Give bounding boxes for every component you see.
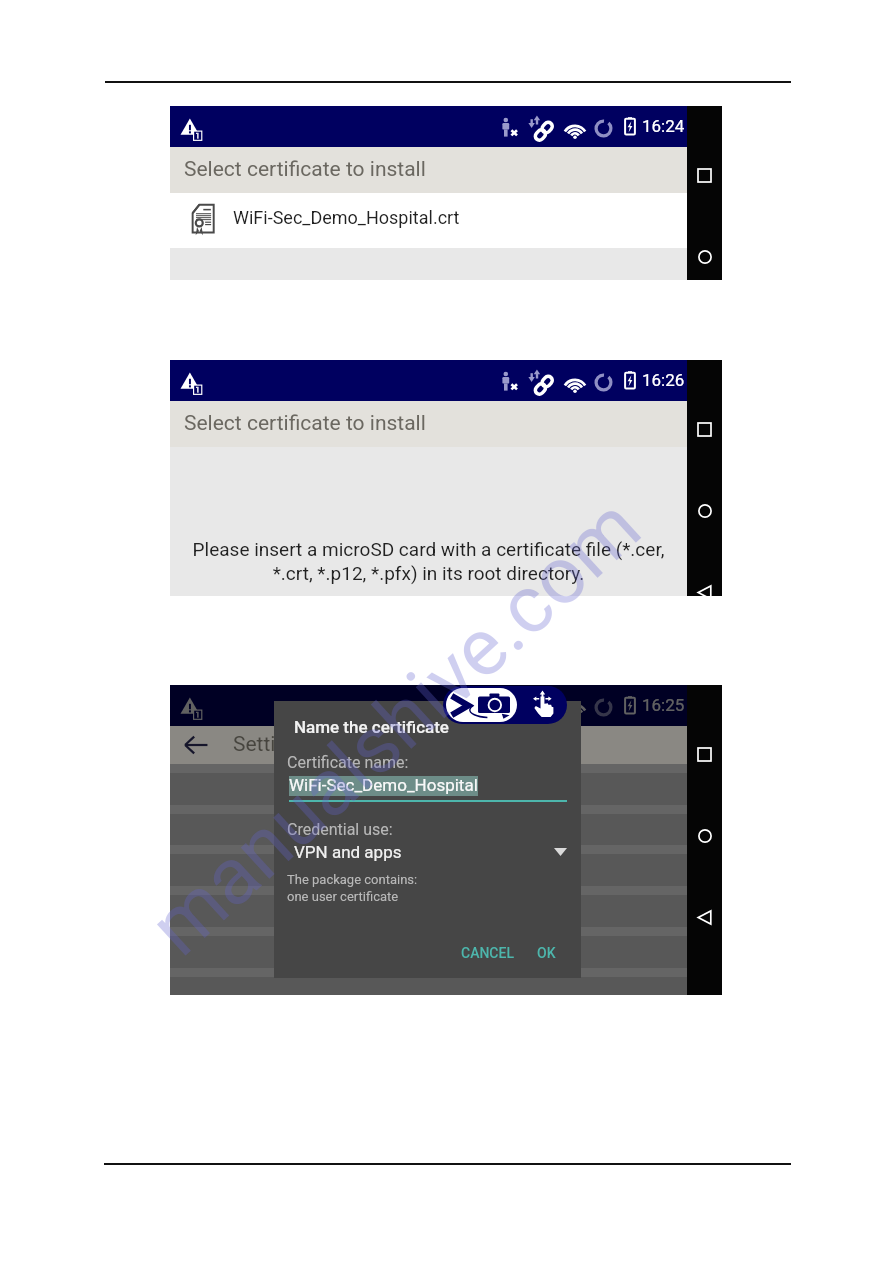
staticText: VPN and apps bbox=[294, 842, 402, 862]
staticText: 16:25 bbox=[642, 695, 685, 715]
button[interactable]: Recents bbox=[687, 741, 722, 767]
staticText: CANCEL bbox=[461, 945, 514, 961]
staticText: manualshive.com bbox=[131, 479, 659, 974]
other: Back bbox=[183, 732, 209, 758]
button[interactable] bbox=[170, 805, 687, 846]
staticText: one user certificate bbox=[287, 889, 399, 904]
staticText: 16:24 bbox=[642, 116, 685, 136]
button[interactable]: Home bbox=[687, 244, 722, 270]
button[interactable]: Recents bbox=[687, 416, 722, 442]
button[interactable]: Recents bbox=[687, 162, 722, 188]
button[interactable] bbox=[170, 968, 687, 1009]
staticText: Credential use: bbox=[287, 820, 393, 839]
button[interactable]: WiFi-Sec_Demo_Hospital.crt bbox=[170, 193, 687, 248]
staticText: WiFi-Sec_Demo_Hospital bbox=[289, 775, 478, 795]
button[interactable]: Back bbox=[687, 904, 722, 930]
staticText: Select certificate to install bbox=[184, 411, 426, 436]
button[interactable]: VPN and apps bbox=[287, 840, 570, 866]
staticText: OK bbox=[537, 945, 556, 961]
staticText: Select certificate to install bbox=[184, 157, 426, 182]
button[interactable]: CANCEL bbox=[453, 939, 522, 967]
button[interactable] bbox=[170, 764, 687, 805]
staticText: Name the certificate bbox=[294, 717, 449, 737]
staticText: Settings bbox=[233, 732, 310, 757]
button[interactable]: OK bbox=[529, 939, 564, 967]
button[interactable]: Back bbox=[170, 726, 687, 764]
button[interactable]: Back bbox=[687, 579, 722, 605]
staticText: Certificate name: bbox=[287, 753, 409, 772]
button[interactable] bbox=[170, 845, 687, 886]
button[interactable]: Home bbox=[687, 498, 722, 524]
button[interactable] bbox=[170, 886, 687, 927]
button[interactable] bbox=[170, 927, 687, 968]
button[interactable]: Home bbox=[687, 823, 722, 849]
staticText: Please insert a microSD card with a cert… bbox=[170, 538, 687, 585]
staticText: 16:26 bbox=[642, 370, 685, 390]
staticText: The package contains: bbox=[287, 872, 418, 887]
button[interactable]: Screenshot toolbar bbox=[443, 686, 567, 724]
staticText: WiFi-Sec_Demo_Hospital.crt bbox=[233, 207, 460, 228]
